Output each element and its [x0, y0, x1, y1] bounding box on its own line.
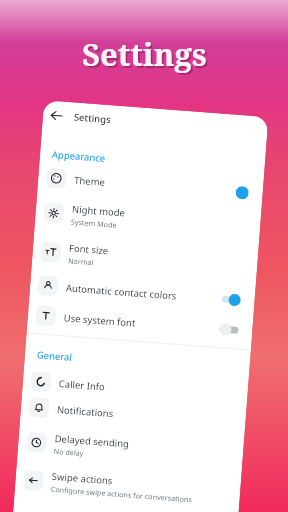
button[interactable]: Delayed sending	[17, 421, 244, 478]
staticText: General	[36, 348, 73, 364]
staticText: Night mode	[71, 203, 126, 220]
button[interactable]: Theme	[37, 163, 264, 208]
staticText: Delayed sending	[54, 432, 130, 450]
staticText: Use system font	[63, 311, 136, 330]
staticText: Settings	[82, 33, 207, 75]
button[interactable]: Use system font	[27, 301, 253, 345]
staticText: Caller Info	[58, 377, 106, 394]
staticText: Settings	[73, 110, 111, 126]
button[interactable]: Caller Info	[22, 366, 248, 411]
button[interactable]: Night mode	[34, 192, 262, 249]
button[interactable]: Notifications	[20, 392, 246, 437]
button[interactable]: Font size	[31, 231, 259, 288]
button[interactable]: Back	[45, 104, 67, 126]
button[interactable]: Automatic contact colors	[29, 271, 256, 315]
staticText: Notifications	[56, 403, 114, 420]
staticText: Normal	[68, 255, 94, 267]
staticText: Font size	[69, 241, 109, 257]
staticText: Appearance	[52, 148, 106, 165]
staticText: Settings	[84, 35, 209, 77]
button[interactable]: Swipe actions	[14, 459, 241, 512]
staticText: No delay	[53, 446, 84, 458]
staticText: Theme	[74, 174, 106, 189]
staticText: Swipe actions	[51, 470, 113, 487]
staticText: Configure swipe actions for conversation…	[50, 484, 193, 504]
staticText: Automatic contact colors	[66, 281, 177, 303]
staticText: System Mode	[71, 216, 117, 230]
